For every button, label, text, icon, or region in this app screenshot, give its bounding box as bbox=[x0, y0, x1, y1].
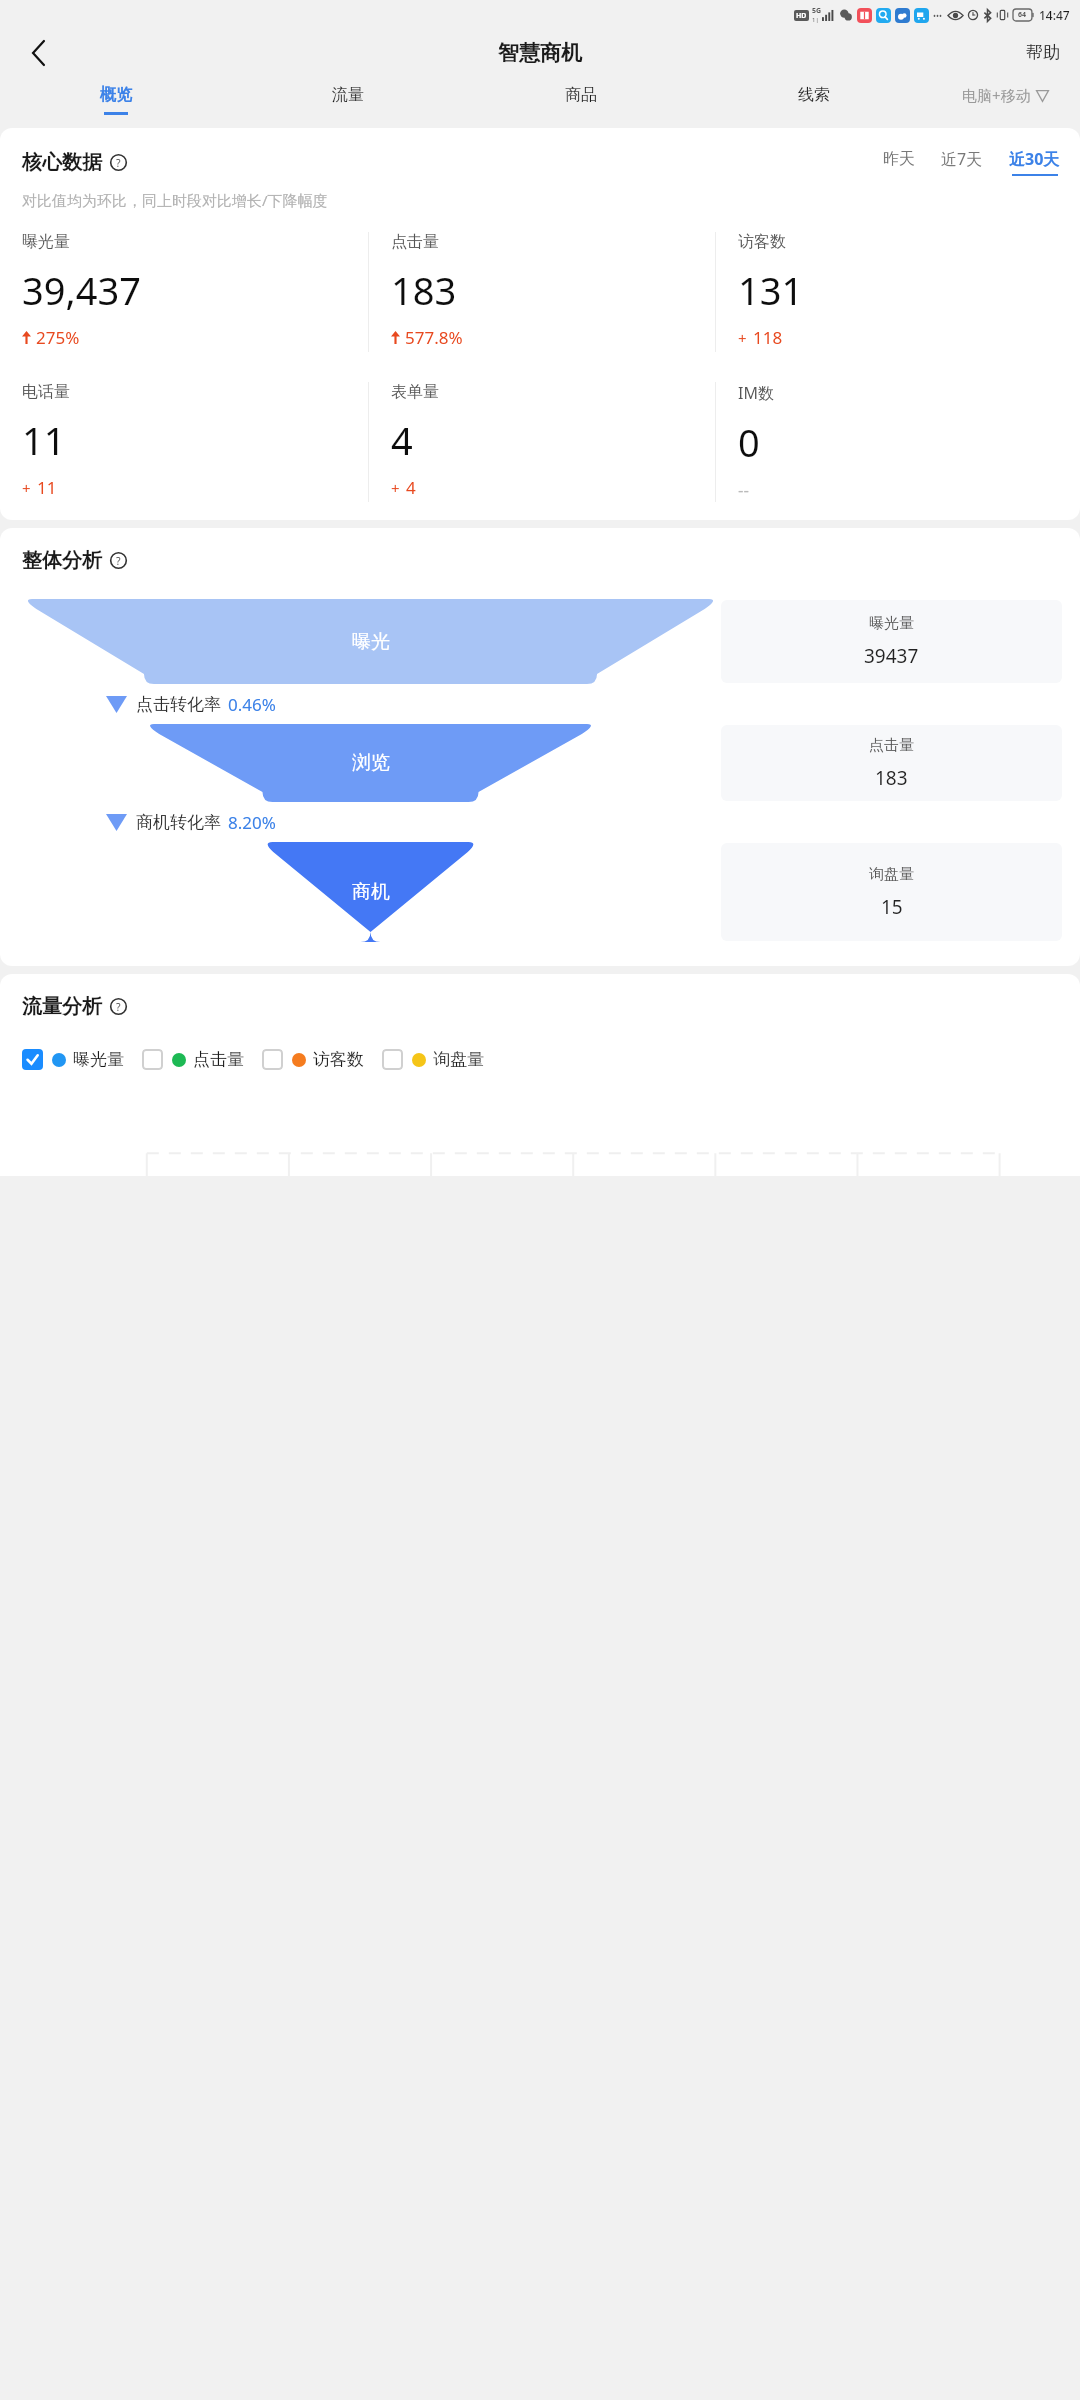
staticText: 昨天 bbox=[883, 149, 915, 169]
staticText: + bbox=[738, 328, 747, 348]
button[interactable]: 昨天 bbox=[881, 149, 917, 175]
button[interactable]: 访客数 bbox=[738, 232, 1062, 352]
staticText: 核心数据 bbox=[22, 150, 102, 175]
staticText: 电话量 bbox=[22, 382, 70, 402]
staticText: 131 bbox=[738, 264, 804, 316]
staticText: 询盘量 bbox=[433, 1049, 484, 1070]
button[interactable]: 曝光量 bbox=[721, 600, 1062, 683]
staticText: 39,437 bbox=[22, 264, 141, 316]
staticText: 183 bbox=[391, 264, 457, 316]
staticText: 对比值均为环比，同上时段对比增长/下降幅度 bbox=[22, 190, 328, 210]
staticText: 商机 bbox=[352, 880, 390, 904]
staticText: 帮助 bbox=[1026, 42, 1060, 63]
staticText: 线索 bbox=[798, 85, 830, 105]
button[interactable]: 商品 bbox=[464, 76, 697, 124]
staticText: 流量 bbox=[332, 85, 364, 105]
staticText: 275% bbox=[36, 326, 80, 349]
button[interactable]: 询盘量 bbox=[721, 843, 1062, 941]
staticText: 电脑+移动 bbox=[962, 85, 1031, 105]
staticText: + bbox=[22, 478, 31, 498]
staticText: 11 bbox=[22, 414, 66, 466]
staticText: HD bbox=[796, 11, 807, 21]
staticText: 4 bbox=[406, 476, 416, 499]
staticText: 点击量 bbox=[869, 736, 914, 755]
staticText: 曝光量 bbox=[22, 232, 70, 252]
staticText: 14:47 bbox=[1039, 7, 1070, 23]
button[interactable]: 曝光量 bbox=[22, 1049, 124, 1070]
staticText: 0 bbox=[738, 416, 760, 468]
staticText: 近7天 bbox=[941, 148, 983, 170]
button[interactable]: Back bbox=[18, 33, 58, 73]
button[interactable]: 近7天 bbox=[939, 148, 985, 176]
staticText: 点击量 bbox=[391, 232, 439, 252]
staticText: 0.46% bbox=[228, 693, 276, 716]
staticText: 577.8% bbox=[405, 326, 463, 349]
staticText: ? bbox=[116, 554, 121, 568]
button[interactable]: 点击量 bbox=[142, 1049, 244, 1070]
staticText: IM数 bbox=[738, 382, 774, 404]
staticText: 183 bbox=[875, 765, 908, 791]
staticText: 曝光量 bbox=[73, 1049, 124, 1070]
button[interactable]: 帮助 bbox=[1020, 36, 1066, 69]
button[interactable]: 曝光量 bbox=[22, 232, 368, 352]
staticText: ? bbox=[116, 156, 121, 170]
staticText: 曝光量 bbox=[869, 614, 914, 633]
staticText: 点击转化率 bbox=[136, 694, 221, 715]
staticText: 曝光 bbox=[352, 630, 390, 654]
staticText: 点击量 bbox=[193, 1049, 244, 1070]
staticText: 近30天 bbox=[1009, 148, 1060, 170]
staticText: 15 bbox=[881, 894, 903, 920]
button[interactable]: 点击量 bbox=[391, 232, 715, 352]
button[interactable]: 概览 bbox=[0, 76, 232, 124]
staticText: 智慧商机 bbox=[498, 40, 582, 66]
staticText: ••• bbox=[933, 10, 943, 21]
staticText: ? bbox=[116, 1000, 121, 1014]
staticText: 1| bbox=[812, 16, 819, 24]
button[interactable]: 电话量 bbox=[22, 382, 368, 502]
button[interactable]: 询盘量 bbox=[382, 1049, 484, 1070]
staticText: 询盘量 bbox=[869, 865, 914, 884]
staticText: 商机转化率 bbox=[136, 812, 221, 833]
staticText: 4 bbox=[391, 414, 413, 466]
staticText: 5G bbox=[812, 6, 822, 16]
staticText: 表单量 bbox=[391, 382, 439, 402]
staticText: 流量分析 bbox=[22, 994, 102, 1019]
staticText: 39437 bbox=[864, 643, 919, 669]
staticText: 11 bbox=[37, 476, 57, 499]
staticText: 浏览 bbox=[352, 751, 390, 775]
button[interactable]: IM数 bbox=[738, 382, 1062, 502]
staticText: 64 bbox=[1018, 10, 1027, 20]
button[interactable]: 点击量 bbox=[721, 725, 1062, 801]
button[interactable]: 流量 bbox=[232, 76, 464, 124]
staticText: + bbox=[391, 478, 400, 498]
staticText: 访客数 bbox=[313, 1049, 364, 1070]
staticText: 整体分析 bbox=[22, 548, 102, 573]
staticText: -- bbox=[738, 478, 749, 501]
button[interactable]: 电脑+移动 bbox=[930, 76, 1080, 124]
staticText: 118 bbox=[753, 326, 783, 349]
button[interactable]: 表单量 bbox=[391, 382, 715, 502]
staticText: 概览 bbox=[100, 85, 132, 105]
staticText: 访客数 bbox=[738, 232, 786, 252]
button[interactable]: 访客数 bbox=[262, 1049, 364, 1070]
staticText: 8.20% bbox=[228, 811, 276, 834]
staticText: 商品 bbox=[565, 85, 597, 105]
button[interactable]: 近30天 bbox=[1007, 148, 1062, 176]
button[interactable]: 线索 bbox=[697, 76, 930, 124]
